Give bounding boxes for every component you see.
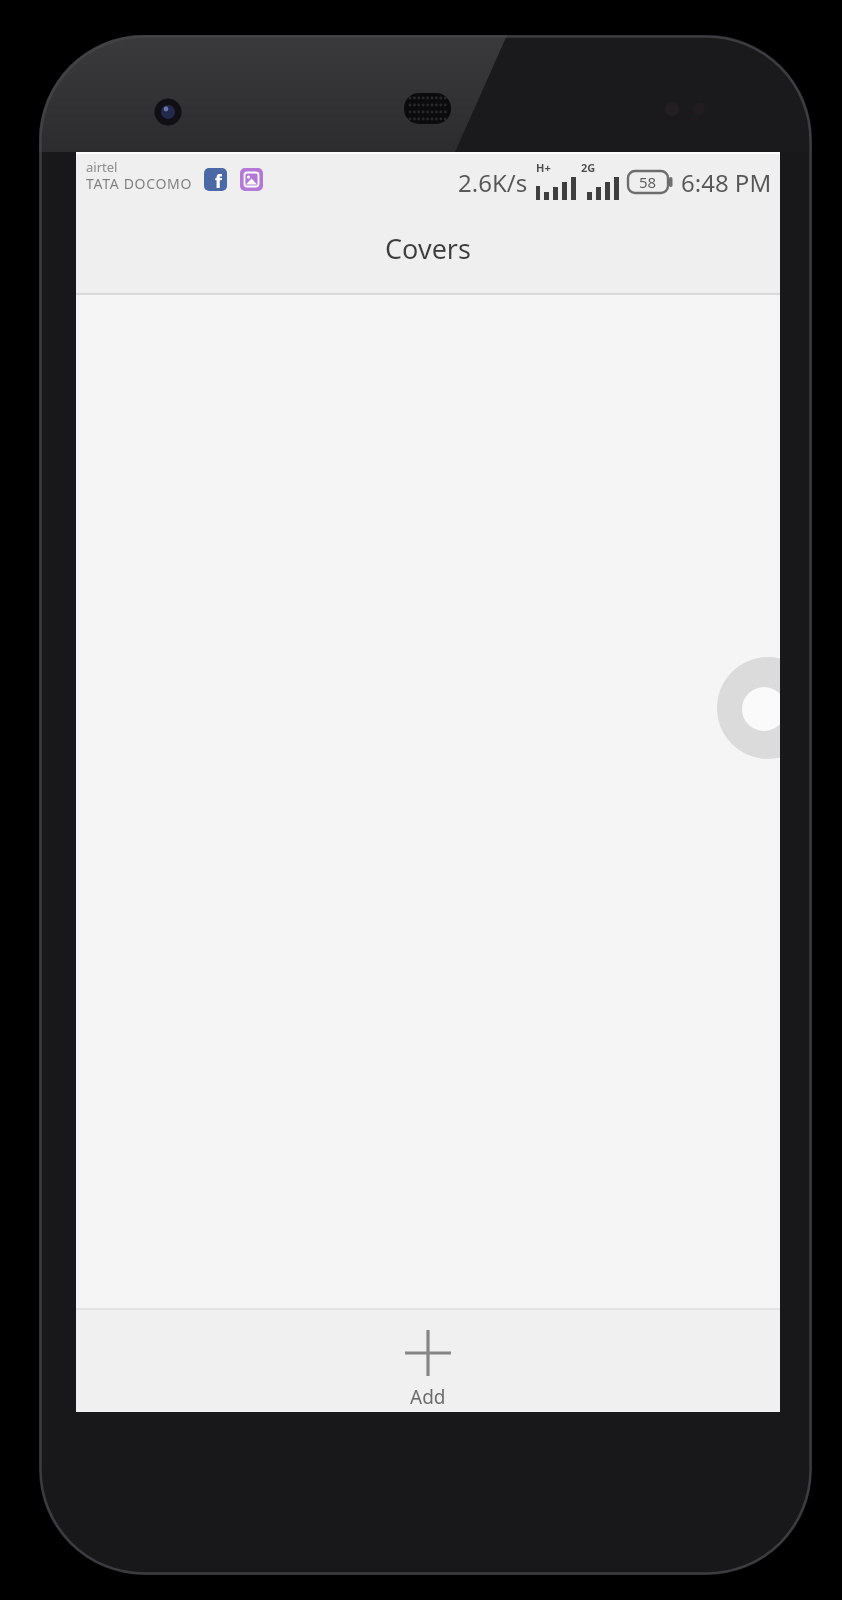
staticText: 2.6K/s (458, 166, 528, 199)
staticText: H+ (536, 160, 551, 175)
staticText: Covers (76, 230, 780, 267)
staticText: 2G (581, 160, 596, 175)
staticText: 6:48 PM (681, 166, 772, 199)
button[interactable] (717, 657, 780, 759)
button[interactable]: Add (76, 1308, 780, 1412)
staticText: TATA DOCOMO (86, 174, 193, 193)
staticText: Add (410, 1384, 446, 1410)
staticText: airtel (86, 158, 118, 176)
staticText: 58 (639, 172, 657, 192)
staticText: f (215, 169, 222, 191)
